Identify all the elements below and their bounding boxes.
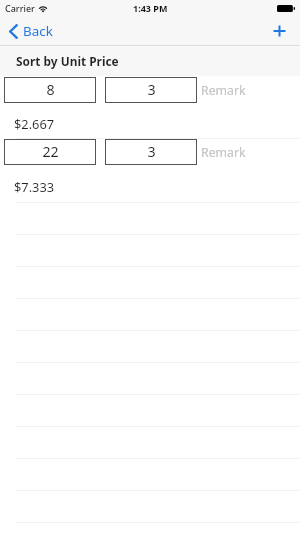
- button[interactable]: 22: [4, 139, 96, 165]
- button[interactable]: 8: [0, 76, 300, 138]
- button[interactable]: 8: [4, 77, 96, 103]
- button[interactable]: Add: [266, 21, 300, 41]
- staticText: Carrier: [5, 2, 35, 14]
- button[interactable]: 3: [105, 139, 197, 165]
- staticText: Remark: [201, 82, 246, 99]
- staticText: $7.333: [14, 178, 55, 195]
- staticText: 22: [42, 142, 59, 161]
- staticText: 3: [147, 142, 156, 161]
- staticText: 8: [46, 80, 55, 99]
- button[interactable]: [0, 522, 300, 533]
- staticText: Remark: [201, 144, 246, 161]
- button[interactable]: Back: [0, 19, 61, 43]
- staticText: $2.667: [14, 115, 55, 132]
- staticText: Sort by Unit Price: [16, 53, 119, 69]
- button[interactable]: 22: [0, 138, 300, 202]
- staticText: 1:43 PM: [133, 2, 168, 14]
- staticText: 3: [147, 80, 156, 99]
- button[interactable]: 3: [105, 77, 197, 103]
- staticText: Back: [23, 22, 53, 40]
